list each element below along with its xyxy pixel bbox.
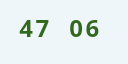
staticText: 47 06 — [19, 11, 102, 44]
